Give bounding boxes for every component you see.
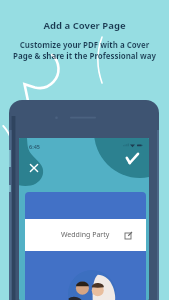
staticText: Wedding Party bbox=[61, 230, 110, 240]
staticText: Customize your PDF with a Cover Page & s… bbox=[13, 40, 156, 61]
button[interactable]: Edit title bbox=[122, 229, 134, 241]
staticText: 6:45 bbox=[29, 143, 40, 150]
staticText: Add a Cover Page bbox=[43, 19, 126, 32]
button[interactable]: Close bbox=[24, 158, 44, 178]
button[interactable]: Done bbox=[121, 147, 143, 169]
